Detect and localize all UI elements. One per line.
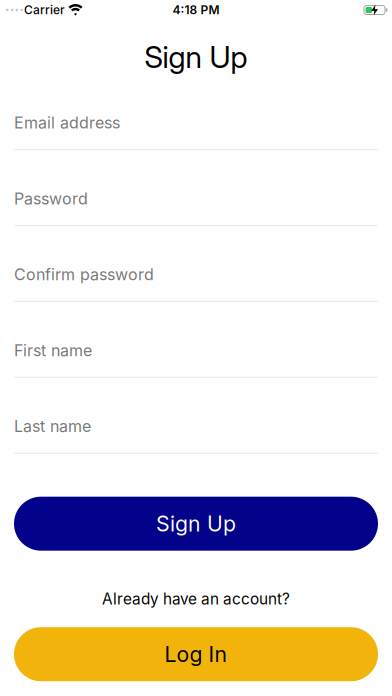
- staticText: First name: [14, 341, 92, 360]
- staticText: Password: [14, 189, 88, 208]
- button[interactable]: Password: [14, 189, 378, 226]
- button[interactable]: Log In: [14, 627, 378, 681]
- button[interactable]: First name: [14, 341, 378, 378]
- staticText: Sign Up: [144, 39, 247, 75]
- button[interactable]: Sign Up: [14, 497, 378, 551]
- staticText: Log In: [164, 642, 227, 667]
- button[interactable]: Email address: [14, 113, 378, 150]
- staticText: Carrier: [24, 3, 65, 17]
- staticText: Last name: [14, 417, 91, 436]
- button[interactable]: Last name: [14, 417, 378, 454]
- button[interactable]: Confirm password: [14, 265, 378, 302]
- staticText: Already have an account?: [102, 590, 290, 608]
- staticText: Email address: [14, 113, 120, 132]
- staticText: Sign Up: [156, 511, 236, 536]
- staticText: Confirm password: [14, 265, 154, 284]
- staticText: 4:18 PM: [172, 3, 219, 17]
